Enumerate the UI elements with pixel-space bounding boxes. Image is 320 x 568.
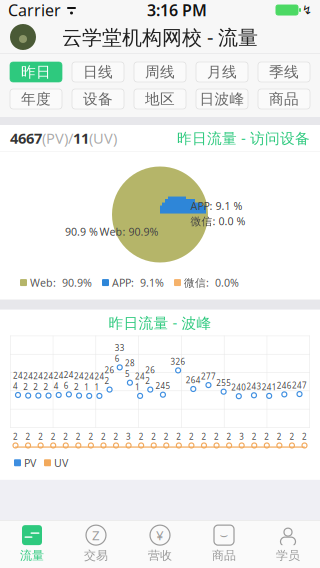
staticText: 昨日流量 - 访问设备 (177, 128, 310, 148)
staticText: 262 (105, 365, 115, 386)
staticText: 90.9 % (65, 224, 98, 239)
staticText: 季线 (269, 63, 299, 81)
staticText: 264 (186, 375, 201, 385)
staticText: 247 (292, 380, 307, 391)
staticText: 2 (88, 431, 93, 442)
staticText: ⌣ (219, 529, 228, 542)
staticText: 月线 (207, 63, 237, 81)
staticText: 2 (289, 431, 294, 442)
button[interactable]: 昨日 (10, 62, 62, 82)
button[interactable]: ¥ (128, 521, 192, 567)
staticText: 3:16 PM (147, 0, 207, 21)
staticText: PV (24, 456, 36, 470)
button[interactable]: 周线 (134, 62, 186, 82)
staticText: 2 (264, 431, 269, 442)
staticText: 2 (201, 431, 206, 442)
staticText: 日线 (83, 63, 113, 81)
staticText: 学员 (276, 548, 300, 563)
staticText: 285 (125, 358, 135, 379)
button[interactable]: Profile (10, 24, 36, 50)
staticText: 2 (151, 431, 156, 442)
staticText: 2 (189, 431, 194, 442)
staticText: ¥ (156, 526, 164, 544)
staticText: 交易 (84, 548, 108, 563)
staticText: 年度 (21, 90, 51, 108)
button[interactable]: 日波峰 (196, 89, 248, 109)
staticText: 255 (216, 378, 231, 388)
staticText: 326 (171, 356, 186, 367)
button[interactable]: ⌣ (192, 521, 256, 567)
staticText: 流量 (20, 548, 44, 563)
button[interactable]: 日线 (72, 62, 124, 82)
staticText: 地区 (145, 90, 175, 108)
staticText: 微信: 0.0% (184, 275, 239, 290)
button[interactable]: 月线 (196, 62, 248, 82)
staticText: 2 (13, 431, 18, 442)
staticText: 昨日 (21, 63, 51, 81)
button[interactable]: 设备 (72, 89, 124, 109)
staticText: 241 (135, 371, 145, 392)
staticText: 241 (262, 382, 277, 392)
staticText: Web: 90.9% (30, 275, 92, 290)
staticText: 2 (26, 431, 31, 442)
staticText: 244 (54, 370, 64, 391)
staticText: 246 (277, 380, 292, 391)
staticText: 2 (176, 431, 181, 442)
staticText: 336 (115, 343, 125, 364)
button[interactable]: 流量 (0, 521, 64, 567)
staticText: 设备 (83, 90, 113, 108)
staticText: 周线 (145, 63, 175, 81)
staticText: 2 (302, 431, 307, 442)
staticText: 微信: 0.0 % (190, 214, 245, 228)
staticText: 2 (113, 431, 118, 442)
staticText: (UV) (89, 128, 117, 148)
staticText: 241 (84, 371, 94, 392)
staticText: 3 (239, 431, 244, 442)
staticText: 云学堂机构网校 - 流量 (62, 24, 258, 50)
staticText: 11 (73, 128, 89, 148)
staticText: 4667 (10, 128, 42, 148)
staticText: 2 (38, 431, 43, 442)
button[interactable]: Z (64, 521, 128, 567)
staticText: UV (54, 456, 68, 470)
staticText: 2 (101, 431, 106, 442)
staticText: APP: 9.1 % (190, 199, 242, 213)
button[interactable]: 地区 (134, 89, 186, 109)
staticText: 昨日流量 - 波峰 (108, 313, 211, 332)
staticText: 商品 (212, 548, 236, 563)
staticText: 2 (277, 431, 282, 442)
button[interactable]: 年度 (10, 89, 62, 109)
staticText: 243 (246, 381, 261, 392)
staticText: 2 (139, 431, 144, 442)
staticText: 商品 (269, 90, 299, 108)
staticText: 244 (13, 370, 23, 391)
staticText: 242 (23, 371, 33, 392)
staticText: 2 (214, 431, 219, 442)
staticText: 日波峰 (199, 90, 244, 108)
button[interactable]: 季线 (258, 62, 310, 82)
staticText: 242 (74, 371, 84, 392)
staticText: 2 (63, 431, 68, 442)
staticText: 245 (155, 381, 170, 391)
staticText: 2 (164, 431, 169, 442)
staticText: Carrier (8, 0, 61, 21)
staticText: Web: 90.9% (99, 224, 158, 239)
staticText: 242 (33, 371, 43, 392)
staticText: Z (92, 526, 100, 544)
button[interactable]: 商品 (258, 89, 310, 109)
staticText: 241 (94, 371, 104, 392)
staticText: 262 (145, 365, 155, 386)
staticText: APP: 9.1% (112, 275, 164, 290)
staticText: 277 (201, 371, 216, 382)
staticText: ↯ (302, 3, 312, 17)
staticText: 246 (64, 370, 74, 391)
staticText: 3 (126, 431, 131, 442)
staticText: 2 (76, 431, 81, 442)
staticText: 240 (231, 382, 246, 393)
staticText: 2 (227, 431, 232, 442)
staticText: (PV)/ (42, 128, 73, 148)
staticText: 242 (43, 371, 53, 392)
button[interactable]: 学员 (256, 521, 320, 567)
staticText: 2 (51, 431, 56, 442)
staticText: 2 (252, 431, 257, 442)
